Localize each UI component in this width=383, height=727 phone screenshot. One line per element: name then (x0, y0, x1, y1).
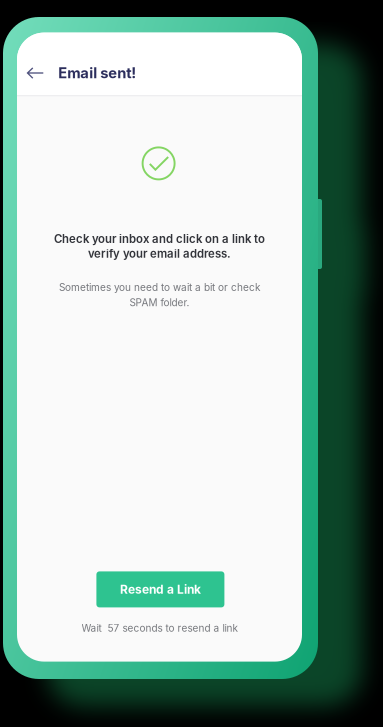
staticText: Email sent! (58, 64, 136, 82)
staticText: verify your email address. (88, 247, 231, 260)
staticText: SPAM folder. (129, 296, 189, 309)
staticText: Resend a Link (120, 582, 201, 597)
button[interactable]: Resend a Link (96, 571, 224, 607)
button[interactable]: Back (17, 33, 57, 95)
staticText: Check your inbox and click on a link to (54, 232, 265, 246)
staticText: Sometimes you need to wait a bit or chec… (59, 281, 260, 293)
staticText: Wait 57 seconds to resend a link (81, 622, 237, 634)
